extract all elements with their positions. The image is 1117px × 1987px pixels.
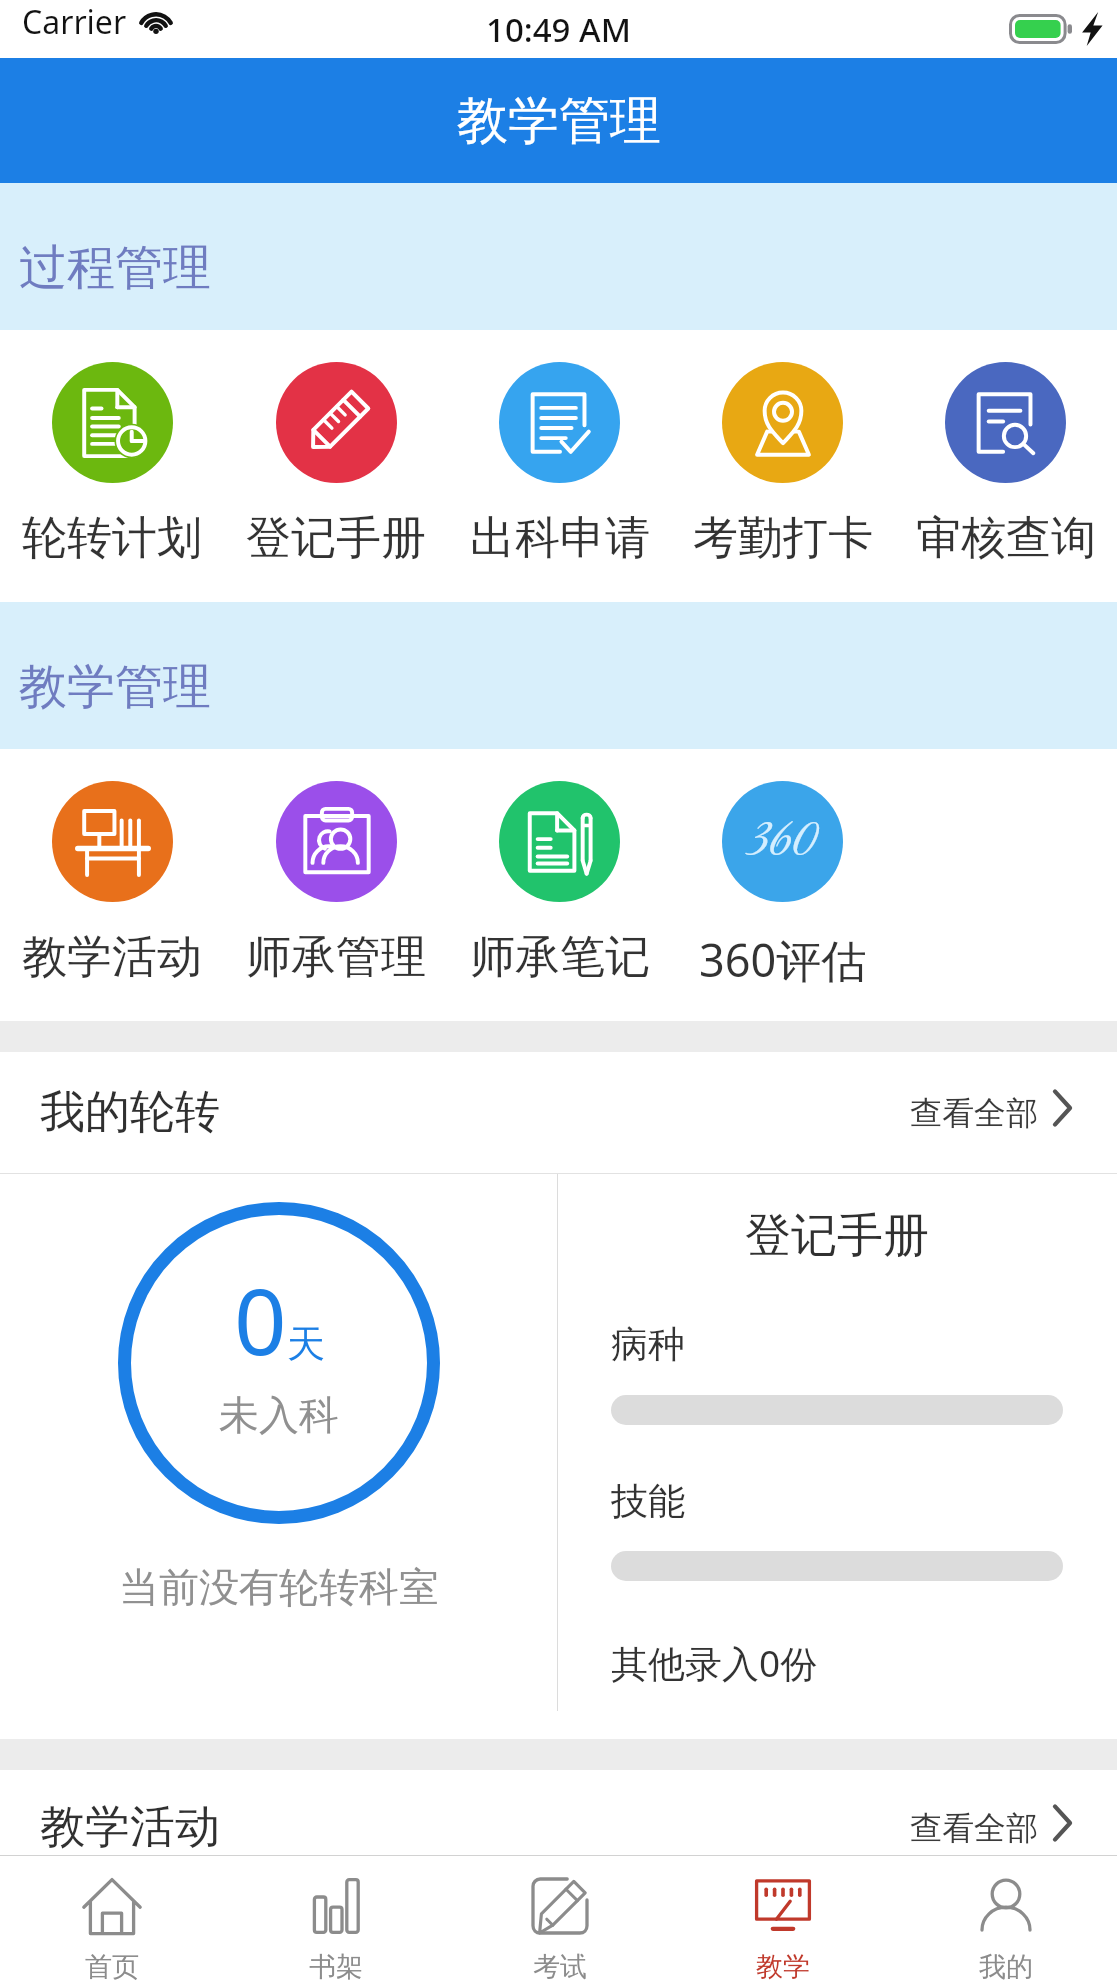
button[interactable]: 我的 <box>894 1856 1117 1987</box>
button[interactable]: 我的轮转 <box>0 1052 1117 1173</box>
staticText: 我的轮转 <box>40 1084 220 1141</box>
button[interactable]: 登记手册 <box>224 330 448 602</box>
staticText: 当前没有轮转科室 <box>119 1562 439 1612</box>
button[interactable]: 书架 <box>224 1856 448 1987</box>
staticText: 首页 <box>85 1950 139 1984</box>
button[interactable]: 教学 <box>671 1856 894 1987</box>
button[interactable]: 360评估 <box>671 749 894 1021</box>
staticText: 360 <box>748 807 818 877</box>
staticText: 师承笔记 <box>470 929 650 986</box>
staticText: Carrier <box>22 0 127 44</box>
button[interactable]: 首页 <box>0 1856 224 1987</box>
staticText: 查看全部 <box>910 1808 1038 1848</box>
staticText: 10:49 AM <box>486 7 631 52</box>
staticText: 天 <box>287 1320 325 1368</box>
staticText: 0 <box>234 1257 287 1382</box>
staticText: 技能 <box>611 1478 685 1525</box>
button[interactable]: 轮转计划 <box>0 330 224 602</box>
button[interactable]: 出科申请 <box>448 330 671 602</box>
staticText: 教学 <box>756 1950 810 1984</box>
button[interactable]: 考试 <box>448 1856 671 1987</box>
staticText: 我的 <box>979 1950 1033 1984</box>
button[interactable]: 考勤打卡 <box>671 330 894 602</box>
staticText: 考勤打卡 <box>693 510 873 567</box>
button[interactable]: 教学活动 <box>0 749 224 1021</box>
staticText: 未入科 <box>219 1390 339 1440</box>
staticText: 其他录入0份 <box>611 1637 818 1688</box>
button[interactable]: 师承管理 <box>224 749 448 1021</box>
staticText: 360评估 <box>699 929 867 990</box>
staticText: 登记手册 <box>611 1207 1063 1265</box>
staticText: 查看全部 <box>910 1093 1038 1133</box>
staticText: 登记手册 <box>246 510 426 567</box>
staticText: 轮转计划 <box>22 510 202 567</box>
staticText: 考试 <box>533 1950 587 1984</box>
staticText: 教学管理 <box>19 657 211 717</box>
button[interactable]: 教学活动 <box>0 1785 1117 1870</box>
staticText: 病种 <box>611 1321 685 1368</box>
staticText: 过程管理 <box>19 238 211 298</box>
staticText: 审核查询 <box>916 510 1096 567</box>
staticText: 出科申请 <box>470 510 650 567</box>
staticText: 师承管理 <box>246 929 426 986</box>
staticText: 教学活动 <box>22 929 202 986</box>
button[interactable]: 师承笔记 <box>448 749 671 1021</box>
button[interactable]: 审核查询 <box>894 330 1117 602</box>
staticText: 教学活动 <box>40 1799 220 1856</box>
staticText: 书架 <box>309 1950 363 1984</box>
staticText: 教学管理 <box>457 89 661 153</box>
